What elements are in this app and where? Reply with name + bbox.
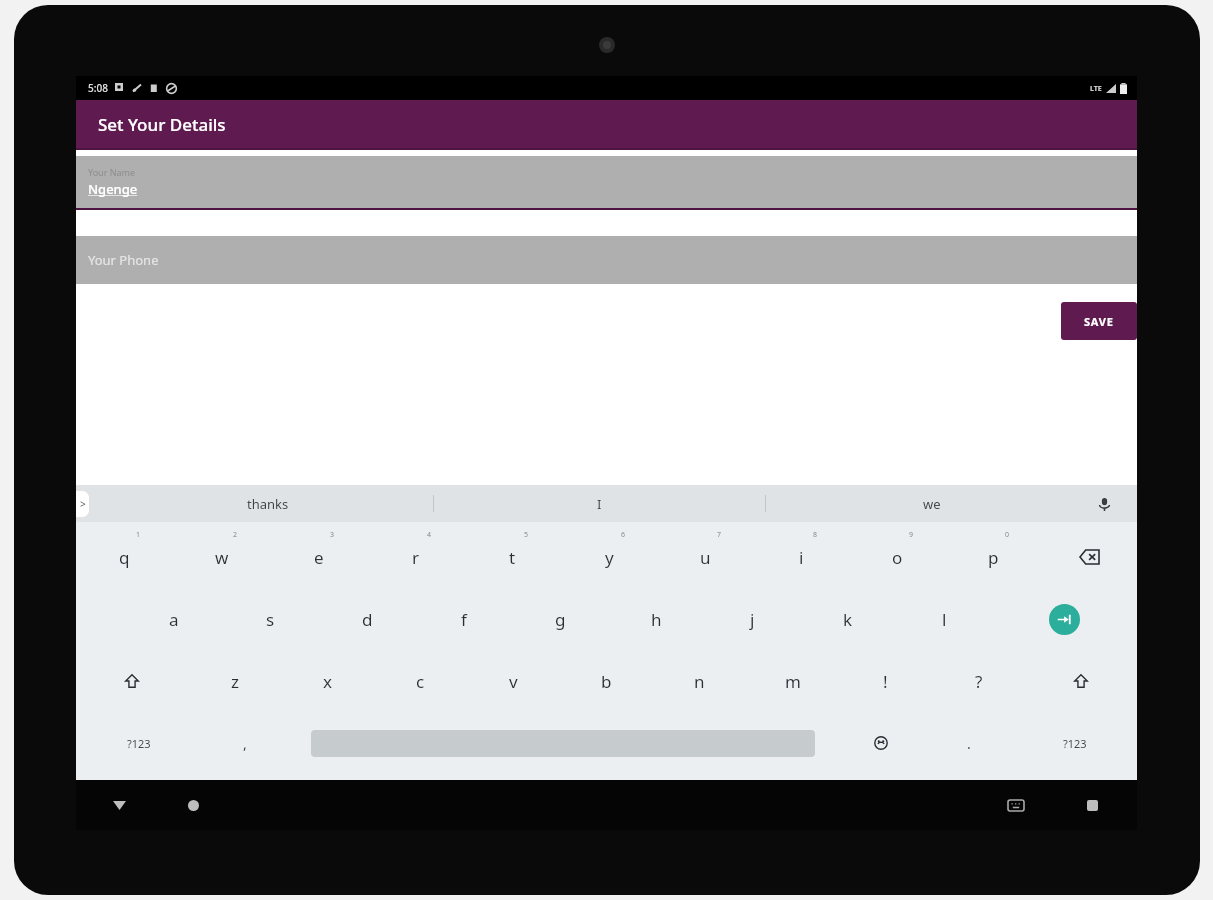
staticText: d	[362, 608, 373, 631]
button[interactable]: Shift	[1025, 650, 1137, 712]
staticText: l	[942, 608, 947, 631]
staticText: k	[843, 608, 853, 631]
button[interactable]: thanks	[102, 485, 433, 522]
staticText: 2	[233, 530, 238, 540]
button[interactable]: Expand suggestions	[76, 491, 89, 517]
staticText: LTE	[1090, 84, 1102, 94]
staticText: 5	[524, 530, 529, 540]
staticText: f	[461, 608, 467, 631]
staticText: 4	[427, 530, 432, 540]
button[interactable]: i	[753, 526, 849, 588]
staticText: 7	[717, 530, 722, 540]
button[interactable]: I	[434, 485, 765, 522]
staticText: 6	[621, 530, 626, 540]
button[interactable]: Emoji	[837, 712, 925, 774]
button[interactable]: z	[188, 650, 281, 712]
button[interactable]: s	[222, 588, 319, 650]
button[interactable]: t	[464, 526, 561, 588]
staticText: ?	[975, 670, 983, 693]
button[interactable]: x	[281, 650, 374, 712]
button[interactable]: Hide keyboard	[999, 788, 1033, 822]
button[interactable]: we	[766, 485, 1097, 522]
button[interactable]: w	[173, 526, 270, 588]
button[interactable]: Shift	[76, 650, 188, 712]
staticText: z	[231, 670, 239, 693]
button[interactable]: n	[653, 650, 746, 712]
button[interactable]: Your Phone	[76, 236, 1137, 284]
staticText: j	[750, 608, 755, 631]
button[interactable]: f	[416, 588, 512, 650]
staticText: b	[601, 670, 612, 693]
button[interactable]: Recent apps	[1075, 788, 1109, 822]
staticText: 3	[330, 530, 335, 540]
staticText: Your Phone	[88, 251, 159, 269]
staticText: Your Name	[88, 166, 136, 178]
button[interactable]: Set Your Details	[76, 100, 1137, 148]
staticText: !	[883, 670, 888, 693]
button[interactable]: ?	[932, 650, 1025, 712]
staticText: e	[314, 546, 324, 569]
staticText: p	[988, 546, 999, 569]
button[interactable]: Back	[102, 788, 136, 822]
button[interactable]: SAVE	[1061, 302, 1137, 340]
staticText: t	[509, 546, 516, 569]
staticText: c	[416, 670, 425, 693]
staticText: m	[785, 670, 801, 693]
staticText: a	[169, 608, 179, 631]
staticText: 5:08	[88, 81, 108, 95]
staticText: Set Your Details	[98, 113, 226, 136]
staticText: ,	[243, 734, 247, 753]
button[interactable]: Home	[176, 788, 210, 822]
button[interactable]: ?123	[1013, 712, 1137, 774]
staticText: 8	[813, 530, 818, 540]
staticText: v	[509, 670, 518, 693]
staticText: 9	[909, 530, 914, 540]
button[interactable]: y	[561, 526, 657, 588]
button[interactable]: Backspace	[1041, 526, 1137, 588]
staticText: x	[323, 670, 332, 693]
staticText: ?123	[1063, 736, 1087, 751]
button[interactable]: h	[608, 588, 704, 650]
staticText: u	[700, 546, 711, 569]
button[interactable]: k	[800, 588, 896, 650]
button[interactable]: l	[896, 588, 992, 650]
button[interactable]: q	[76, 526, 173, 588]
button[interactable]: v	[467, 650, 560, 712]
staticText: thanks	[247, 495, 289, 513]
staticText: ?123	[127, 736, 151, 751]
button[interactable]: o	[849, 526, 945, 588]
staticText: y	[605, 546, 614, 569]
button[interactable]: b	[560, 650, 653, 712]
staticText: s	[266, 608, 275, 631]
button[interactable]: Your Name	[76, 156, 1137, 208]
staticText: q	[119, 546, 130, 569]
button[interactable]: a	[125, 588, 222, 650]
button[interactable]: m	[746, 650, 839, 712]
button[interactable]: d	[319, 588, 416, 650]
button[interactable]: r	[367, 526, 464, 588]
staticText: r	[412, 546, 420, 569]
button[interactable]: p	[945, 526, 1041, 588]
button[interactable]: ,	[201, 712, 289, 774]
button[interactable]: c	[374, 650, 467, 712]
staticText: h	[651, 608, 662, 631]
staticText: .	[967, 734, 971, 753]
button[interactable]: Next field	[1049, 604, 1080, 635]
staticText: i	[799, 546, 804, 569]
button[interactable]: ?123	[76, 712, 201, 774]
staticText: g	[555, 608, 566, 631]
button[interactable]: g	[512, 588, 608, 650]
staticText: we	[923, 495, 941, 513]
staticText: o	[892, 546, 903, 569]
button[interactable]: u	[657, 526, 753, 588]
staticText: 1	[136, 530, 141, 540]
button[interactable]: e	[270, 526, 367, 588]
staticText: w	[215, 546, 229, 569]
button[interactable]: j	[704, 588, 800, 650]
staticText: >	[80, 497, 86, 511]
button[interactable]: Voice input	[1091, 491, 1117, 517]
staticText: I	[597, 495, 602, 513]
button[interactable]: !	[839, 650, 932, 712]
